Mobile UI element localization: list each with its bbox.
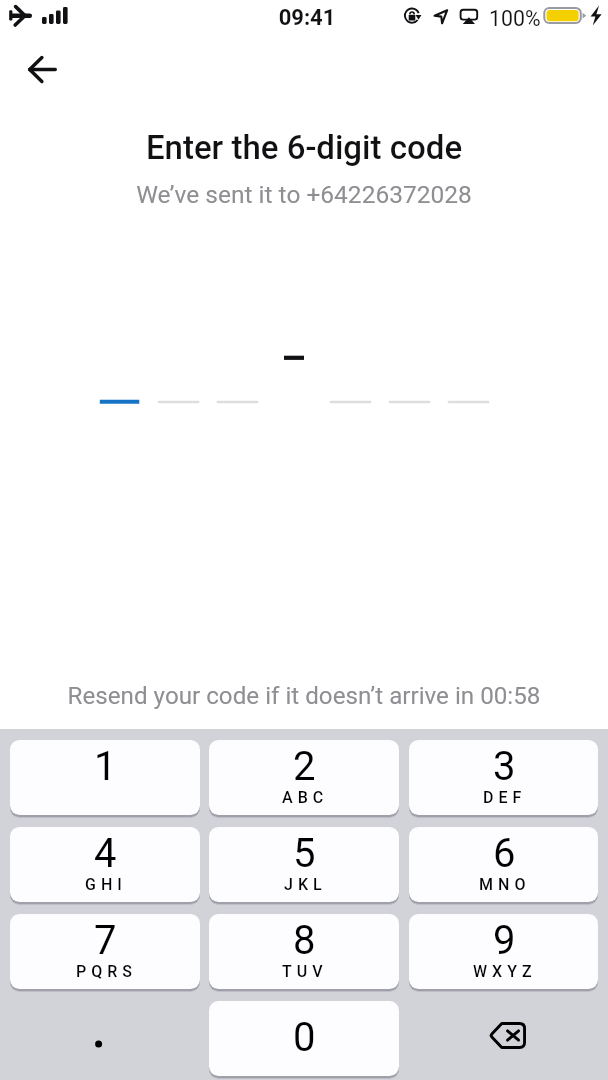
staticText: 3 (493, 743, 516, 790)
staticText: WXYZ (473, 962, 537, 981)
button[interactable]: 2 (209, 740, 399, 815)
button[interactable]: 8 (209, 914, 399, 989)
staticText: 5 (293, 830, 316, 877)
staticText: 7 (94, 917, 117, 964)
button[interactable]: 1 (10, 740, 200, 815)
button[interactable]: 0 (209, 1001, 399, 1076)
staticText: 1 (94, 743, 117, 790)
staticText: PQRS (76, 962, 137, 981)
button[interactable]: 7 (10, 914, 200, 989)
staticText: DEF (483, 788, 527, 807)
staticText: 0 (293, 1014, 316, 1061)
button[interactable]: 6 (409, 827, 598, 902)
staticText: We’ve sent it to +64226372028 (0, 180, 608, 209)
staticText: 8 (293, 917, 316, 964)
staticText: 09:41 (3, 5, 608, 31)
staticText: 2 (293, 743, 316, 790)
staticText: Resend your code if it doesn’t arrive in… (0, 682, 608, 710)
staticText: 4 (94, 830, 117, 877)
button[interactable] (10, 1001, 200, 1076)
button[interactable]: Delete (409, 1001, 598, 1076)
staticText: Enter the 6-digit code (0, 128, 608, 167)
staticText: 100% (489, 6, 541, 31)
staticText: TUV (282, 962, 328, 981)
button[interactable]: 9 (409, 914, 598, 989)
button[interactable]: Back (6, 44, 76, 94)
button[interactable]: 5 (209, 827, 399, 902)
staticText: 9 (493, 917, 516, 964)
staticText: ABC (282, 788, 329, 807)
staticText: GHI (85, 875, 127, 894)
staticText: 6 (493, 830, 516, 877)
staticText: JKL (284, 875, 327, 894)
staticText: MNO (479, 875, 531, 894)
button[interactable]: 4 (10, 827, 200, 902)
button[interactable]: 3 (409, 740, 598, 815)
